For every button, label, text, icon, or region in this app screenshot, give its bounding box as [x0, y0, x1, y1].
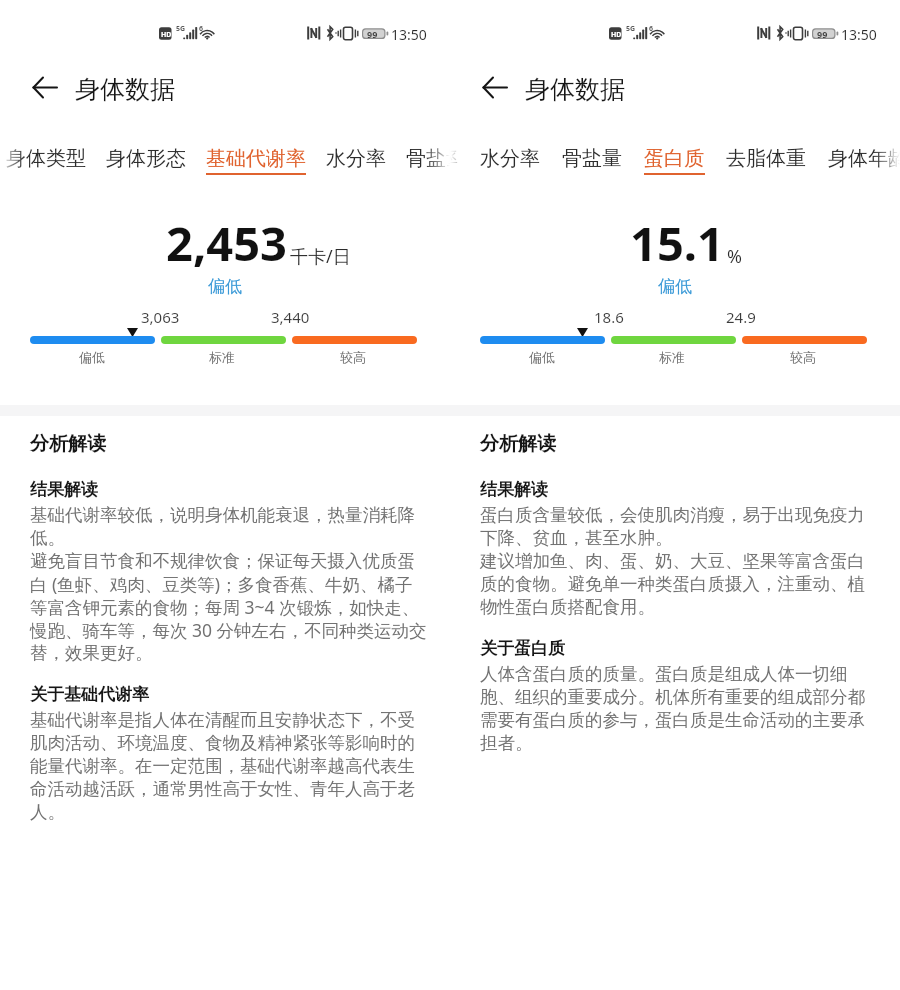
staticText: 5G: [176, 24, 186, 34]
staticText: 蛋白质: [644, 146, 704, 171]
staticText: 身体类型: [6, 146, 86, 171]
staticText: 身体年龄: [828, 146, 900, 171]
staticText: 13:50: [841, 25, 877, 44]
staticText: 偏低: [208, 276, 242, 297]
button[interactable]: 身体类型: [0, 142, 96, 182]
staticText: 偏低: [79, 349, 105, 365]
staticText: 水分率: [326, 146, 386, 171]
button[interactable]: 骨盐量: [551, 142, 633, 182]
staticText: 3,440: [271, 307, 310, 327]
staticText: 关于蛋白质: [480, 638, 565, 659]
staticText: 骨盐量: [406, 146, 450, 171]
staticText: 蛋白质含量较低，会使肌肉消瘦，易于出现免疫力下降、贫血，甚至水肿。 建议增加鱼、…: [480, 504, 878, 618]
button[interactable]: 蛋白质: [633, 142, 715, 182]
staticText: 关于基础代谢率: [30, 684, 149, 705]
staticText: 较高: [790, 349, 816, 365]
staticText: 基础代谢率是指人体在清醒而且安静状态下，不受肌肉活动、环境温度、食物及精神紧张等…: [30, 709, 428, 823]
button[interactable]: 去脂体重: [715, 142, 817, 182]
staticText: 结果解读: [30, 479, 98, 500]
button[interactable]: 身体形态: [96, 142, 196, 182]
staticText: 基础代谢率: [450, 146, 458, 171]
staticText: 标准: [209, 349, 235, 365]
staticText: 6: [199, 24, 204, 34]
button[interactable]: 水分率: [316, 142, 396, 182]
button[interactable]: 身体年龄: [817, 142, 900, 182]
staticText: 较高: [340, 349, 366, 365]
staticText: 人体含蛋白质的质量。蛋白质是组成人体一切细胞、组织的重要成分。机体所有重要的组成…: [480, 663, 878, 754]
staticText: 身体数据: [525, 74, 625, 105]
staticText: 结果解读: [480, 479, 548, 500]
staticText: 18.6: [594, 307, 624, 327]
staticText: 分析解读: [480, 432, 556, 456]
staticText: 分析解读: [30, 432, 106, 456]
staticText: HD: [161, 30, 172, 40]
staticText: 偏低: [658, 276, 692, 297]
staticText: 13:50: [391, 25, 427, 44]
staticText: 骨盐量: [562, 146, 622, 171]
staticText: 标准: [659, 349, 685, 365]
staticText: 3,063: [141, 307, 180, 327]
staticText: 偏低: [529, 349, 555, 365]
button[interactable]: Back: [474, 68, 514, 108]
staticText: 基础代谢率: [206, 146, 306, 171]
staticText: 99: [367, 28, 378, 40]
staticText: 15.1: [630, 211, 724, 275]
staticText: 基础代谢率较低，说明身体机能衰退，热量消耗降低。 避免盲目节食和不规律饮食；保证…: [30, 504, 428, 664]
button[interactable]: Back: [24, 68, 64, 108]
staticText: 5G: [626, 24, 636, 34]
staticText: 24.9: [726, 307, 756, 327]
button[interactable]: 骨盐量: [396, 142, 450, 182]
button[interactable]: 水分率: [469, 142, 551, 182]
staticText: HD: [611, 30, 622, 40]
staticText: 2,453: [166, 211, 287, 275]
staticText: 去脂体重: [726, 146, 806, 171]
staticText: 水分率: [480, 146, 540, 171]
button[interactable]: 基础代谢率: [450, 142, 469, 182]
staticText: 6: [649, 24, 654, 34]
staticText: 千卡/日: [290, 244, 351, 269]
staticText: 99: [817, 28, 828, 40]
button[interactable]: 基础代谢率: [196, 142, 316, 182]
staticText: 身体数据: [75, 74, 175, 105]
staticText: 身体形态: [106, 146, 186, 171]
staticText: %: [727, 244, 742, 269]
